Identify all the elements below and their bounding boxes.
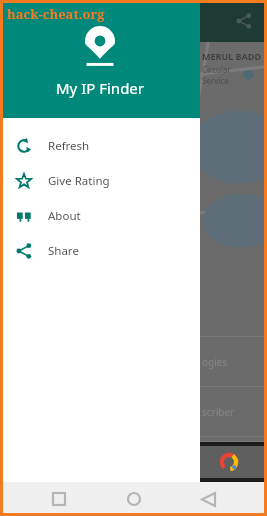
staticText: scriber: [202, 405, 235, 419]
staticText: Share: [48, 243, 79, 259]
button[interactable]: Home: [119, 484, 149, 514]
staticText: MERUL BADD: [202, 50, 261, 62]
button[interactable]: About: [0, 198, 200, 233]
staticText: Refresh: [48, 138, 90, 154]
staticText: Circular: [202, 64, 231, 75]
button[interactable]: Recent apps: [44, 484, 74, 514]
button[interactable]: Share: [229, 6, 259, 36]
staticText: Service: [202, 75, 229, 86]
staticText: Give Rating: [48, 173, 110, 189]
staticText: ogies: [202, 355, 228, 369]
staticText: About: [48, 208, 81, 224]
button[interactable]: Refresh: [0, 128, 200, 163]
staticText: My IP Finder: [56, 78, 145, 98]
button[interactable]: Back: [193, 484, 223, 514]
button[interactable]: Share: [0, 233, 200, 268]
button[interactable]: Give Rating: [0, 163, 200, 198]
button[interactable]: Advertisement: [0, 446, 267, 478]
staticText: hack-cheat.org: [7, 5, 105, 23]
